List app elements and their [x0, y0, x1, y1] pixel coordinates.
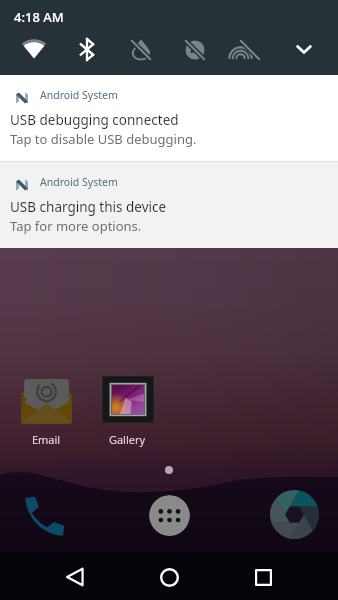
- button[interactable]: Android System: [0, 75, 338, 161]
- button[interactable]: Expand: [282, 28, 326, 72]
- button[interactable]: Recents: [239, 553, 287, 600]
- button[interactable]: Email: [21, 375, 72, 424]
- button[interactable]: Phone: [23, 495, 66, 536]
- staticText: Tap to disable USB debugging.: [10, 130, 197, 148]
- staticText: USB debugging connected: [10, 111, 179, 129]
- button[interactable]: Android System: [0, 162, 338, 248]
- staticText: 4:18 AM: [14, 8, 64, 26]
- staticText: Android System: [40, 175, 118, 189]
- staticText: USB charging this device: [10, 198, 167, 216]
- button[interactable]: Cast: [228, 28, 272, 72]
- staticText: Email: [16, 432, 76, 447]
- button[interactable]: Camera: [270, 490, 319, 539]
- button[interactable]: Wi-Fi: [12, 28, 56, 72]
- staticText: Tap for more options.: [10, 217, 142, 235]
- staticText: Gallery: [97, 432, 157, 447]
- button[interactable]: Back: [51, 553, 99, 600]
- button[interactable]: Home: [145, 553, 193, 600]
- button[interactable]: Apps: [149, 495, 190, 536]
- button[interactable]: Auto rotate: [173, 28, 217, 72]
- button[interactable]: Bluetooth: [65, 28, 109, 72]
- button[interactable]: Do not disturb: [119, 28, 163, 72]
- staticText: Android System: [40, 88, 118, 102]
- button[interactable]: Gallery: [102, 376, 154, 423]
